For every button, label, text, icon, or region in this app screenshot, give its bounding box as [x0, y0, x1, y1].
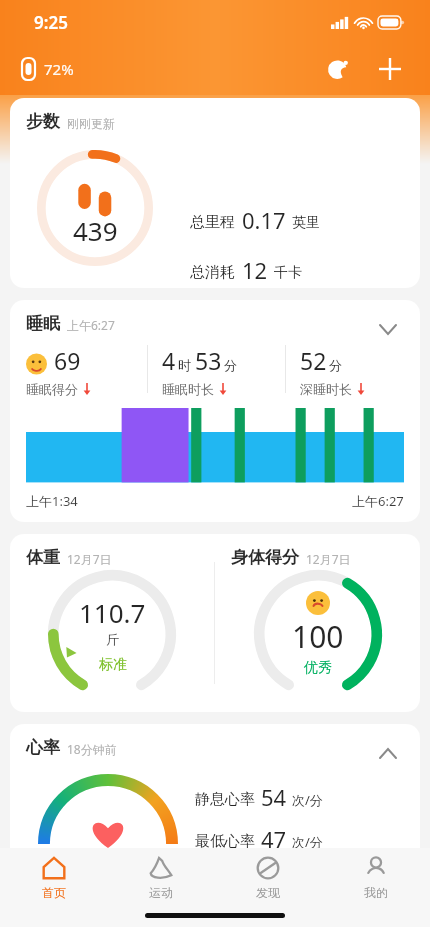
staticText: 标准 — [99, 656, 127, 674]
staticText: 72% — [44, 59, 74, 79]
button[interactable]: 72% — [20, 58, 76, 80]
staticText: 9:25 — [34, 11, 68, 34]
staticText: 上午1:34 — [26, 492, 78, 510]
button[interactable]: 体重 — [10, 534, 420, 712]
button[interactable]: 睡眠 — [10, 300, 420, 522]
staticText: 总里程 — [190, 213, 235, 232]
staticText: 100 — [292, 616, 344, 657]
staticText: 我的 — [364, 885, 388, 900]
staticText: 运动 — [149, 885, 173, 900]
staticText: 深睡时长 — [300, 381, 352, 397]
staticText: 18分钟前 — [67, 741, 117, 757]
button[interactable]: 运动 — [107, 848, 214, 910]
staticText: 110.7 — [79, 595, 146, 630]
staticText: 上午6:27 — [67, 317, 115, 333]
staticText: 体重 — [26, 547, 60, 568]
staticText: 静息心率 — [195, 790, 255, 809]
staticText: 优秀 — [304, 659, 332, 677]
button[interactable]: 我的 — [322, 848, 430, 910]
staticText: 分 — [224, 357, 237, 373]
staticText: 刚刚更新 — [67, 116, 115, 131]
staticText: 最低心率 — [195, 832, 255, 851]
button[interactable]: 首页 — [0, 848, 107, 910]
button[interactable]: 发现 — [214, 848, 322, 910]
staticText: 睡眠时长 — [162, 381, 214, 397]
staticText: 439 — [73, 213, 118, 248]
staticText: 睡眠 — [26, 313, 60, 334]
button[interactable]: Sleep mode — [316, 47, 360, 91]
staticText: 12 — [242, 255, 268, 285]
staticText: 53 — [195, 345, 222, 376]
staticText: 上午6:27 — [352, 492, 404, 510]
staticText: 69 — [54, 345, 81, 376]
staticText: 心率 — [26, 737, 60, 758]
staticText: 次/分 — [292, 791, 323, 809]
button[interactable]: 心率 — [10, 724, 420, 874]
staticText: 次/分 — [292, 833, 323, 851]
staticText: 54 — [261, 782, 287, 812]
staticText: 分 — [329, 357, 342, 373]
staticText: 身体得分 — [231, 547, 299, 568]
staticText: 时 — [178, 357, 191, 373]
button[interactable]: 步数 — [10, 98, 420, 288]
staticText: 步数 — [26, 111, 60, 132]
staticText: 12月7日 — [306, 551, 351, 567]
staticText: 4 — [162, 345, 176, 376]
button[interactable]: Expand heart rate — [372, 737, 404, 769]
staticText: 总消耗 — [190, 263, 235, 282]
staticText: 英里 — [292, 214, 320, 232]
staticText: 12月7日 — [67, 551, 112, 567]
button[interactable]: Collapse sleep — [372, 313, 404, 345]
staticText: 千卡 — [274, 264, 302, 282]
staticText: 发现 — [256, 885, 280, 900]
staticText: 47 — [261, 824, 287, 854]
staticText: 睡眠得分 — [26, 381, 78, 397]
staticText: 首页 — [42, 885, 66, 900]
staticText: 斤 — [106, 631, 119, 647]
button[interactable]: Add — [368, 47, 412, 91]
staticText: 52 — [300, 345, 327, 376]
staticText: 0.17 — [242, 205, 286, 235]
